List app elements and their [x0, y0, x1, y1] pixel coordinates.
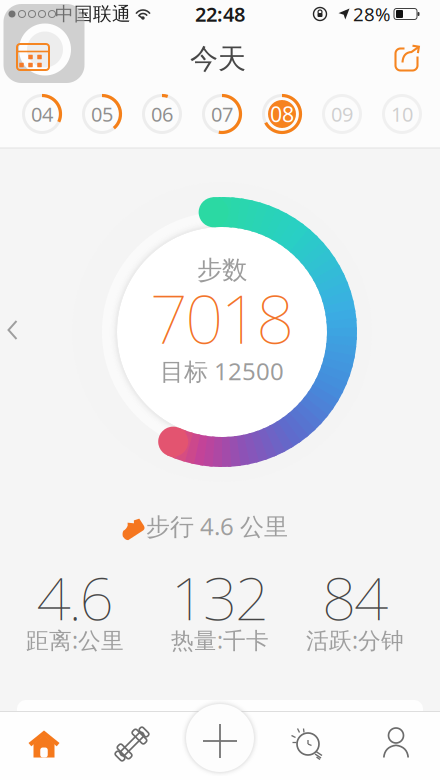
staticText: 07 [211, 101, 233, 127]
staticText: 22:48 [195, 1, 245, 27]
button[interactable]: Day 08 [262, 94, 301, 133]
button[interactable]: Add [186, 704, 254, 772]
button[interactable]: Share [389, 43, 423, 75]
button[interactable]: Profile [366, 719, 426, 769]
button[interactable]: Day 04 [22, 94, 61, 133]
staticText: 10 [391, 101, 413, 127]
staticText: 步行 4.6 公里 [146, 510, 288, 542]
staticText: 距离:公里 [26, 625, 124, 655]
staticText: 热量:千卡 [171, 625, 269, 655]
button[interactable]: Day 09 [322, 94, 361, 133]
staticText: 08 [270, 100, 294, 128]
staticText: 中国联通 [55, 2, 131, 25]
staticText: 7018 [150, 274, 294, 362]
staticText: 05 [91, 101, 113, 127]
button[interactable]: Previous day [7, 320, 18, 340]
staticText: 09 [331, 101, 353, 127]
staticText: 84 [322, 557, 388, 637]
staticText: 06 [151, 101, 173, 127]
button[interactable]: Workouts [102, 719, 162, 769]
button[interactable]: Discover [278, 719, 338, 769]
button[interactable]: Day 07 [202, 94, 241, 133]
staticText: 今天 [190, 42, 246, 76]
staticText: 活跃:分钟 [306, 625, 404, 655]
staticText: 04 [31, 101, 53, 127]
staticText: 4.6 [36, 557, 113, 637]
staticText: 目标 12500 [160, 355, 284, 387]
button[interactable]: Calendar [16, 43, 50, 71]
staticText: 步数 [197, 254, 247, 285]
button[interactable]: Home [14, 719, 74, 769]
button[interactable]: Day 05 [82, 94, 121, 133]
button[interactable]: Day 10 [382, 94, 421, 133]
button[interactable]: Day 06 [142, 94, 181, 133]
staticText: 132 [171, 557, 269, 637]
staticText: 28% [353, 2, 391, 26]
